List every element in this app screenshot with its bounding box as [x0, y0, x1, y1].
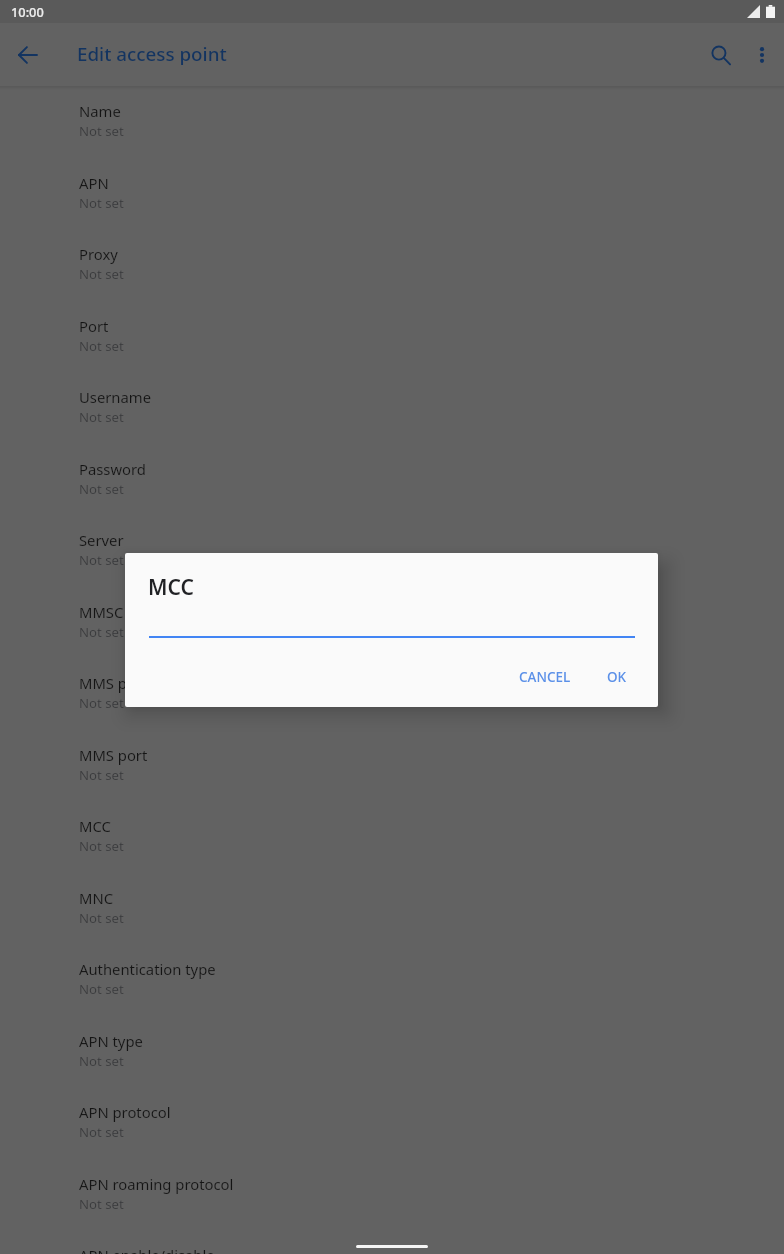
staticText: MNC: [79, 888, 114, 908]
staticText: APN roaming protocol: [79, 1174, 234, 1194]
staticText: Not set: [79, 265, 124, 283]
button[interactable]: CANCEL: [511, 662, 579, 692]
staticText: CANCEL: [519, 668, 571, 686]
staticText: Not set: [79, 623, 124, 641]
staticText: Authentication type: [79, 959, 216, 979]
staticText: Not set: [79, 909, 124, 927]
button[interactable]: Name: [0, 90, 784, 161]
staticText: MCC: [148, 573, 194, 602]
staticText: Not set: [79, 1052, 124, 1070]
staticText: APN: [79, 173, 109, 193]
staticText: Not set: [79, 337, 124, 355]
staticText: Not set: [79, 1195, 124, 1213]
staticText: OK: [607, 668, 627, 686]
button[interactable]: Back: [4, 31, 52, 79]
staticText: Server: [79, 530, 124, 550]
staticText: Name: [79, 101, 121, 121]
staticText: Port: [79, 316, 109, 336]
staticText: APN enable/disable: [79, 1245, 215, 1254]
staticText: MMSC: [79, 602, 124, 622]
staticText: Proxy: [79, 244, 118, 264]
staticText: Not set: [79, 194, 124, 212]
button[interactable]: APN roaming protocol: [0, 1163, 784, 1234]
button[interactable]: Search: [697, 31, 745, 79]
staticText: Password: [79, 459, 146, 479]
button[interactable]: MMSC: [0, 591, 784, 662]
button[interactable]: Server: [0, 519, 784, 590]
button[interactable]: Password: [0, 448, 784, 519]
button[interactable]: APN protocol: [0, 1091, 784, 1162]
staticText: MMS port: [79, 745, 148, 765]
staticText: Edit access point: [77, 41, 227, 67]
button[interactable]: APN enable/disable: [0, 1234, 784, 1254]
staticText: Not set: [79, 766, 124, 784]
button[interactable]: APN type: [0, 1020, 784, 1091]
staticText: Not set: [79, 980, 124, 998]
staticText: APN protocol: [79, 1102, 171, 1122]
staticText: MMS proxy: [79, 673, 157, 693]
staticText: Not set: [79, 551, 124, 569]
staticText: Username: [79, 387, 151, 407]
staticText: APN type: [79, 1031, 143, 1051]
staticText: Not set: [79, 480, 124, 498]
staticText: 10:00: [11, 3, 44, 20]
button[interactable]: MMS port: [0, 734, 784, 805]
button[interactable]: OK: [599, 662, 635, 692]
staticText: Not set: [79, 1123, 124, 1141]
staticText: Not set: [79, 122, 124, 140]
button[interactable]: Authentication type: [0, 948, 784, 1019]
button[interactable]: More options: [738, 31, 784, 79]
staticText: Not set: [79, 408, 124, 426]
button[interactable]: Username: [0, 376, 784, 447]
staticText: Not set: [79, 837, 124, 855]
staticText: MCC: [79, 816, 111, 836]
button[interactable]: MMS proxy: [0, 662, 784, 733]
staticText: Not set: [79, 694, 124, 712]
